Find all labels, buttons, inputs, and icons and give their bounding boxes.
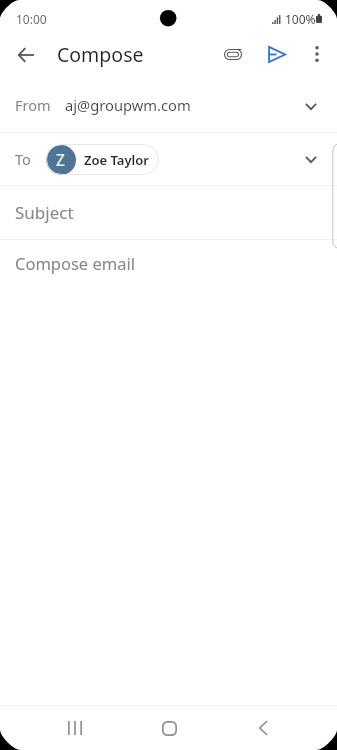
button[interactable]: Subject — [0, 186, 337, 239]
button[interactable]: Navigate up — [7, 36, 45, 72]
staticText: 10:00 — [16, 11, 47, 27]
button[interactable]: Recent apps — [53, 706, 97, 750]
staticText: Compose email — [15, 252, 135, 274]
button[interactable]: Expand from field — [292, 88, 329, 125]
button[interactable]: Back — [241, 706, 285, 750]
button[interactable]: Expand recipients — [292, 141, 329, 178]
button[interactable]: Home — [147, 706, 191, 750]
staticText: Z — [56, 149, 65, 170]
button[interactable]: Compose email — [0, 240, 337, 706]
button[interactable]: More options — [298, 36, 336, 72]
staticText: Compose — [57, 41, 144, 68]
staticText: To — [15, 149, 31, 169]
staticText: Zoe Taylor — [84, 151, 149, 169]
staticText: aj@groupwm.com — [65, 95, 191, 115]
button[interactable]: From — [0, 79, 337, 130]
button[interactable]: Send — [258, 36, 296, 72]
staticText: 100% — [285, 11, 316, 27]
button[interactable]: Z — [46, 144, 159, 175]
button[interactable]: Attach file — [214, 36, 252, 72]
staticText: From — [15, 95, 51, 115]
staticText: Subject — [15, 201, 74, 224]
